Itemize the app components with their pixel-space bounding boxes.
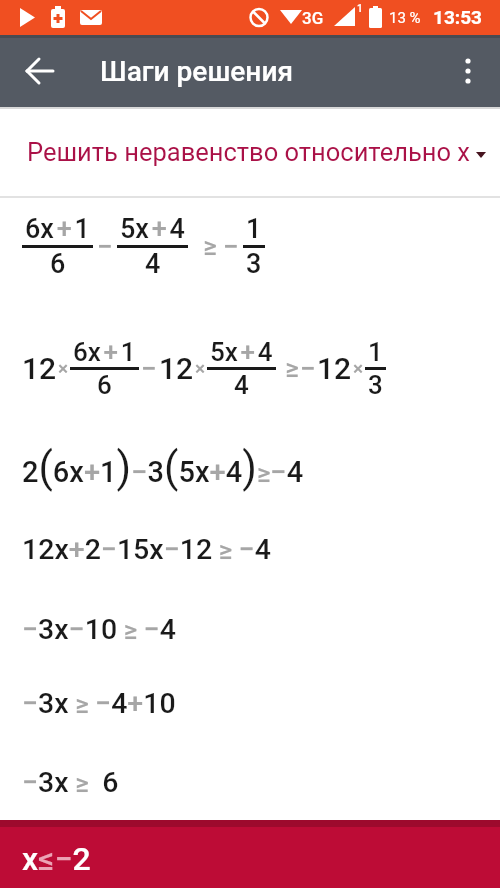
- staticText: ×: [195, 357, 206, 379]
- staticText: 5x + 4: [120, 213, 185, 245]
- staticText: 3: [246, 248, 262, 280]
- button[interactable]: x≤−2: [0, 820, 500, 888]
- button[interactable]: [12, 43, 68, 99]
- staticText: 1: [357, 3, 363, 15]
- staticText: −3x ≥ −4+10: [22, 687, 176, 720]
- staticText: Решить неравенство относительно x: [27, 137, 470, 167]
- staticText: 1: [368, 337, 383, 367]
- staticText: 13:53: [433, 6, 482, 28]
- staticText: ≥: [203, 231, 217, 261]
- staticText: −3x ≥ 6: [22, 766, 119, 799]
- staticText: 12: [159, 351, 194, 386]
- staticText: 6x + 1: [73, 337, 136, 367]
- staticText: 4: [145, 248, 161, 280]
- staticText: 5x + 4: [210, 337, 273, 367]
- staticText: 6: [50, 248, 66, 280]
- staticText: 3: [368, 370, 383, 400]
- staticText: −: [141, 352, 157, 385]
- staticText: 6x + 1: [25, 213, 90, 245]
- staticText: 4: [234, 370, 249, 400]
- staticText: ≥: [285, 353, 299, 383]
- staticText: −: [300, 352, 316, 385]
- staticText: −: [97, 230, 113, 263]
- staticText: −: [223, 230, 239, 263]
- staticText: 1: [246, 213, 262, 245]
- button[interactable]: [446, 49, 490, 93]
- staticText: Шаги решения: [100, 55, 294, 88]
- staticText: ×: [353, 357, 364, 379]
- staticText: 12x+2−15x−12 ≥ −4: [22, 533, 271, 566]
- staticText: 2(6x+1)−3(5x+4)≥−4: [22, 443, 304, 492]
- staticText: 12: [22, 351, 57, 386]
- staticText: x≤−2: [22, 840, 91, 878]
- staticText: 13 %: [389, 9, 421, 27]
- staticText: ×: [58, 357, 69, 379]
- button[interactable]: Решить неравенство относительно x: [0, 116, 500, 188]
- staticText: 12: [317, 351, 352, 386]
- staticText: −3x−10 ≥ −4: [22, 613, 176, 646]
- staticText: 6: [97, 370, 112, 400]
- staticText: 3G: [302, 8, 324, 28]
